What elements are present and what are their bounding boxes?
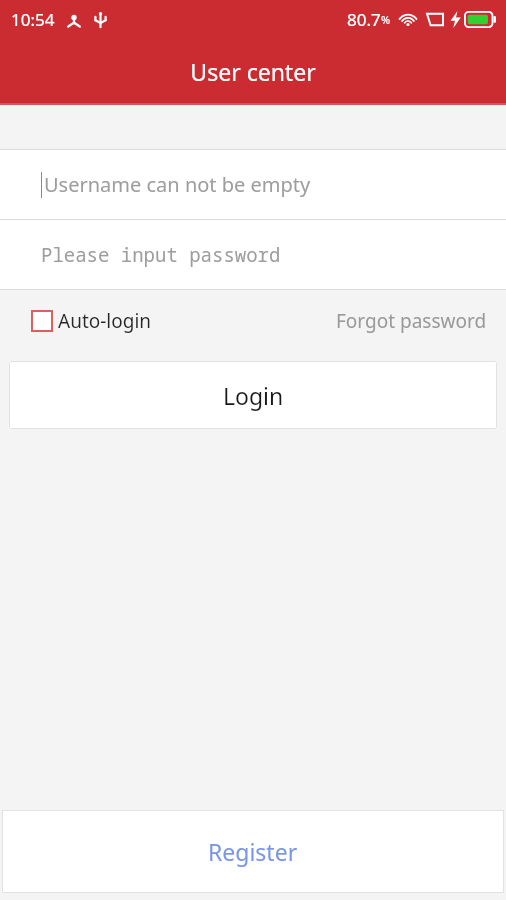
button[interactable]: Username can not be empty: [0, 150, 506, 219]
staticText: Forgot password: [336, 308, 487, 334]
button[interactable]: Forgot password: [336, 308, 487, 334]
button[interactable]: Register: [2, 810, 504, 893]
staticText: Login: [223, 380, 284, 411]
staticText: Auto-login: [58, 308, 152, 334]
button[interactable]: Auto-login: [31, 308, 158, 334]
other: USB connected: [92, 11, 109, 28]
button[interactable]: Please input password: [0, 220, 506, 289]
other: Wi-Fi: [398, 11, 418, 27]
staticText: 10:54: [11, 8, 55, 31]
staticText: Username can not be empty: [44, 171, 311, 198]
staticText: 80.7: [347, 8, 381, 31]
staticText: User center: [190, 56, 316, 87]
other: Nearby share: [65, 10, 83, 28]
button[interactable]: Login: [9, 361, 497, 429]
staticText: Register: [208, 836, 298, 867]
other: No SIM card: [425, 12, 445, 27]
staticText: Please input password: [41, 242, 281, 268]
staticText: %: [381, 12, 391, 27]
